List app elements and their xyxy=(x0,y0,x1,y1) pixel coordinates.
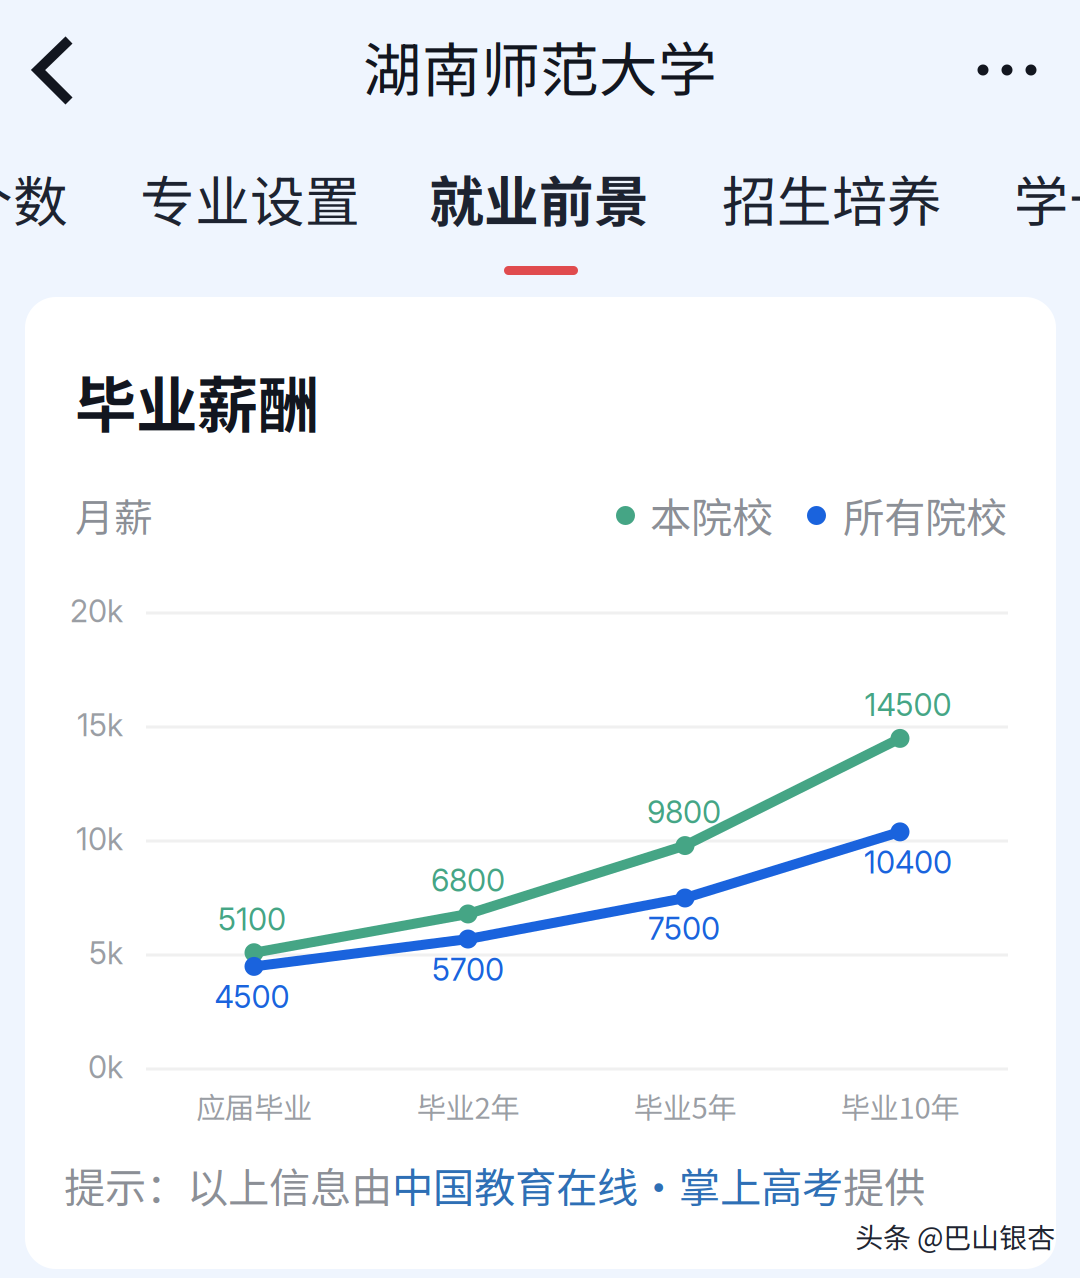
staticText: 中国教育在线·掌上高考 xyxy=(392,1155,843,1215)
staticText: 毕业10年 xyxy=(840,1085,959,1127)
staticText: 14500 xyxy=(864,686,951,723)
staticText: 提示：以上信息由 xyxy=(64,1155,392,1215)
staticText: 5k xyxy=(89,934,123,971)
staticText: 0k xyxy=(88,1048,123,1085)
staticText: 10400 xyxy=(864,844,952,881)
staticText: 月薪 xyxy=(75,487,153,543)
staticText: 专业设置 xyxy=(140,158,360,238)
staticText: 4500 xyxy=(214,978,289,1015)
button[interactable]: Back xyxy=(20,18,108,122)
staticText: 5700 xyxy=(432,951,504,988)
staticText: 20k xyxy=(70,592,123,629)
staticText: 湖南师范大学 xyxy=(363,23,717,108)
staticText: 7500 xyxy=(648,910,720,947)
button[interactable]: 招生培养 xyxy=(706,158,958,288)
staticText: 毕业薪酬 xyxy=(75,357,319,445)
staticText: 15k xyxy=(77,706,123,743)
staticText: 5100 xyxy=(218,901,286,938)
staticText: 所有院校 xyxy=(843,485,1007,545)
staticText: 毕业2年 xyxy=(416,1085,519,1127)
staticText: 学十 xyxy=(1014,158,1080,238)
staticText: 本院校 xyxy=(650,485,773,545)
staticText: 6800 xyxy=(431,862,505,899)
staticText: 应届毕业 xyxy=(196,1085,312,1127)
button[interactable]: 专业设置 xyxy=(124,158,376,288)
staticText: 10k xyxy=(76,820,123,857)
button[interactable]: 就业前景 xyxy=(413,158,665,288)
staticText: 毕业5年 xyxy=(633,1085,736,1127)
staticText: 提供 xyxy=(843,1155,925,1215)
button[interactable]: 个数 xyxy=(0,158,87,288)
staticText: 招生培养 xyxy=(722,158,942,238)
staticText: 头条 @巴山银杏 xyxy=(855,1216,1055,1256)
staticText: 个数 xyxy=(0,158,68,238)
button[interactable]: 学十 xyxy=(995,158,1080,288)
button[interactable]: More xyxy=(952,18,1062,122)
staticText: 9800 xyxy=(647,793,721,831)
staticText: 就业前景 xyxy=(429,158,649,238)
